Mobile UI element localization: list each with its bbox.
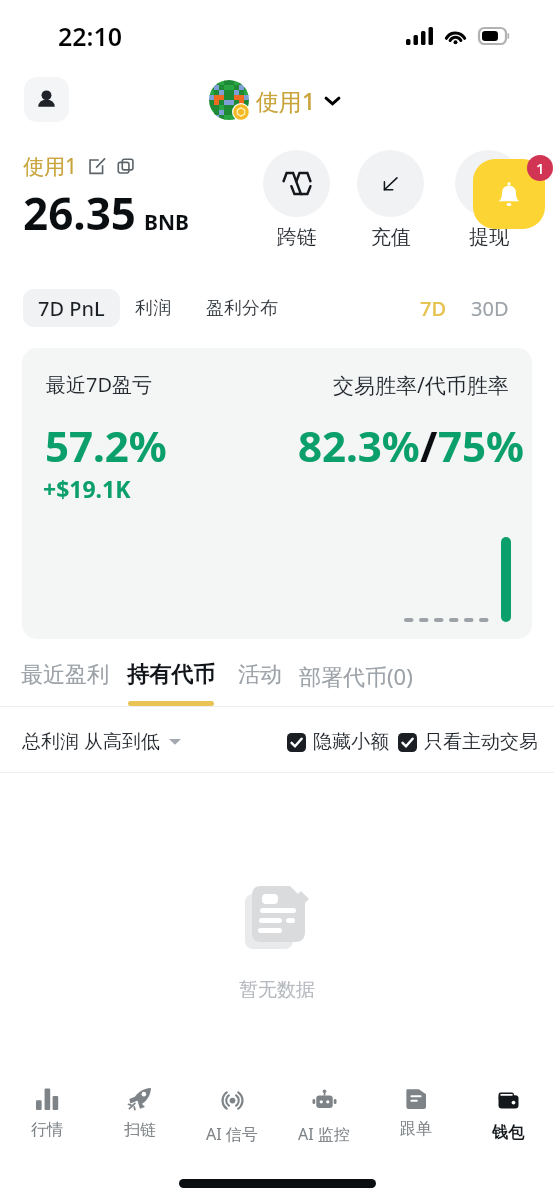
staticText: AI 监控 — [298, 1123, 350, 1143]
staticText: 使用1 — [256, 85, 316, 116]
button[interactable]: Edit name — [87, 157, 106, 176]
staticText: 持有代币 — [127, 661, 215, 689]
staticText: 暂无数据 — [239, 978, 315, 1002]
button[interactable]: Copy address — [116, 157, 135, 176]
staticText: 利润 — [135, 297, 171, 320]
button[interactable]: 只看主动交易 — [392, 722, 544, 762]
staticText: 部署代币(0) — [299, 661, 413, 691]
button[interactable]: 使用1 — [209, 80, 341, 120]
staticText: 57.2% — [45, 417, 167, 474]
button[interactable]: AI 监控 — [278, 1073, 370, 1143]
button[interactable]: 活动 — [228, 653, 292, 697]
staticText: 30D — [471, 295, 509, 322]
button[interactable]: 总利润 从高到低 — [12, 720, 191, 762]
staticText: 交易胜率/代币胜率 — [333, 371, 509, 400]
staticText: 82.3% — [298, 417, 420, 474]
button[interactable]: 跨链 — [263, 150, 330, 250]
staticText: AI 信号 — [206, 1123, 258, 1143]
button[interactable]: 充值 — [357, 150, 424, 250]
button[interactable]: 利润 — [125, 289, 181, 327]
button[interactable]: 钱包 — [462, 1073, 554, 1143]
button[interactable]: 扫链 — [93, 1073, 186, 1140]
button[interactable]: 7D — [411, 289, 456, 327]
staticText: 钱包 — [492, 1123, 524, 1143]
staticText: +$19.1K — [43, 473, 131, 504]
staticText: 活动 — [238, 661, 282, 689]
staticText: 26.35 — [23, 183, 137, 243]
staticText: 1 — [536, 158, 545, 178]
staticText: 提现 — [469, 225, 509, 250]
button[interactable]: 持有代币 — [117, 653, 225, 714]
button[interactable]: 最近盈利 — [11, 653, 119, 697]
button[interactable]: AI 信号 — [186, 1073, 278, 1143]
staticText: 盈利分布 — [206, 297, 278, 320]
staticText: 最近盈利 — [21, 661, 109, 689]
staticText: 跟单 — [400, 1119, 432, 1139]
staticText: 最近7D盈亏 — [46, 371, 153, 398]
button[interactable]: 30D — [462, 289, 518, 327]
button[interactable]: 行情 — [0, 1073, 93, 1140]
staticText: 22:10 — [58, 19, 123, 53]
button[interactable]: Notifications — [473, 159, 545, 229]
button[interactable]: 提现 — [455, 150, 522, 250]
staticText: 7D PnL — [38, 295, 105, 322]
staticText: 只看主动交易 — [424, 730, 538, 754]
staticText: BNB — [144, 208, 190, 237]
button[interactable]: Profile — [24, 77, 69, 122]
staticText: 跨链 — [277, 225, 317, 250]
button[interactable]: 部署代币(0) — [289, 653, 423, 699]
staticText: 隐藏小额 — [313, 730, 389, 754]
button[interactable]: 7D PnL — [23, 289, 120, 327]
button[interactable]: 跟单 — [370, 1073, 462, 1139]
staticText: 扫链 — [124, 1120, 156, 1140]
button[interactable]: 盈利分布 — [196, 289, 288, 327]
staticText: 使用1 — [23, 152, 78, 181]
button[interactable]: 隐藏小额 — [281, 722, 395, 762]
staticText: / — [420, 417, 438, 474]
staticText: 充值 — [371, 225, 411, 250]
staticText: 总利润 从高到低 — [22, 728, 160, 754]
staticText: 7D — [420, 295, 447, 322]
staticText: 75% — [438, 417, 524, 474]
staticText: 行情 — [31, 1120, 63, 1140]
